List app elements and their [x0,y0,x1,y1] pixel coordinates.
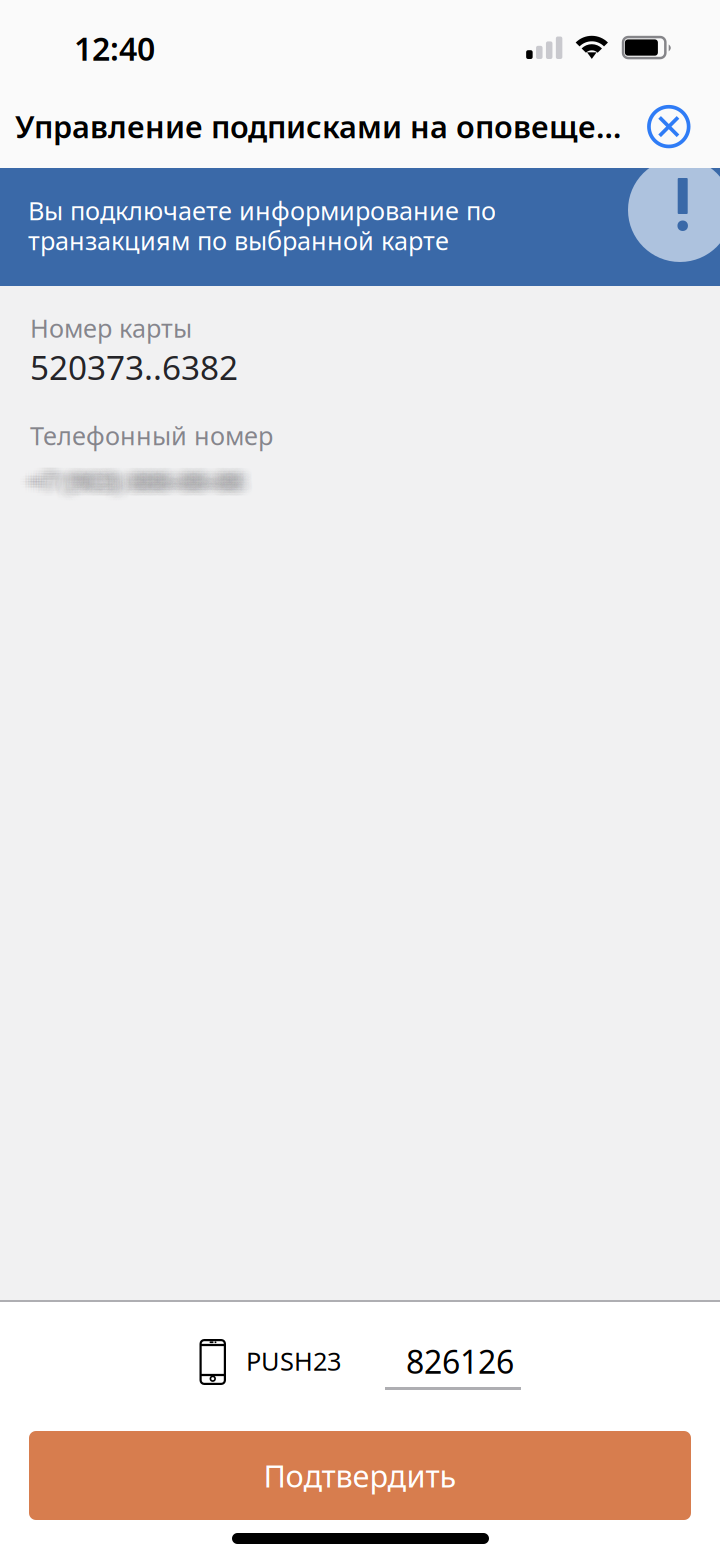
button[interactable]: Close [636,94,702,160]
staticText: +7 (903) 888-88-88 [19,461,233,495]
staticText: +7 (903) 888-88-88 [29,461,243,495]
staticText: +7 (903) 888-88-88 [24,461,238,495]
staticText: 826126 [406,1340,514,1382]
staticText: +7 (903) 888-88-88 [34,469,248,503]
staticText: Телефонный номер [30,418,273,452]
staticText: +7 (903) 888-88-88 [36,469,250,503]
staticText: +7 (903) 888-88-88 [39,469,253,503]
staticText: +7 (903) 888-88-88 [36,466,250,500]
staticText: +7 (903) 888-88-88 [34,461,248,495]
staticText: +7 (903) 888-88-88 [36,464,250,498]
staticText: +7 (903) 888-88-88 [21,464,235,498]
staticText: +7 (903) 888-88-88 [39,461,253,495]
staticText: +7 (903) 888-88-88 [19,459,233,493]
staticText: +7 (903) 888-88-88 [31,464,245,498]
staticText: +7 (903) 888-88-88 [34,459,248,493]
staticText: Управление подписками на оповеще… [15,106,621,147]
staticText: Номер карты [30,311,192,345]
button[interactable]: Подтвердить [29,1431,691,1520]
staticText: +7 (903) 888-88-88 [29,459,243,493]
staticText: +7 (903) 888-88-88 [26,466,240,500]
staticText: +7 (903) 888-88-88 [39,466,253,500]
staticText: +7 (903) 888-88-88 [39,464,253,498]
staticText: +7 (903) 888-88-88 [19,469,233,503]
staticText: +7 (903) 888-88-88 [21,461,235,495]
staticText: +7 (903) 888-88-88 [24,464,238,498]
staticText: +7 (903) 888-88-88 [24,469,238,503]
staticText: +7 (903) 888-88-88 [26,469,240,503]
staticText: 520373..6382 [30,345,238,389]
staticText: +7 (903) 888-88-88 [29,469,243,503]
staticText: +7 (903) 888-88-88 [31,466,245,500]
staticText: транзакциям по выбранной карте [28,223,449,257]
staticText: Вы подключаете информирование по [28,193,496,227]
staticText: Подтвердить [263,1455,456,1496]
staticText: +7 (903) 888-88-88 [24,466,238,500]
staticText: +7 (903) 888-88-88 [26,461,240,495]
staticText: +7 (903) 888-88-88 [24,459,238,493]
staticText: +7 (903) 888-88-88 [36,459,250,493]
staticText: +7 (903) 888-88-88 [29,466,243,500]
staticText: +7 (903) 888-88-88 [21,469,235,503]
staticText: +7 (903) 888-88-88 [31,459,245,493]
staticText: +7 (903) 888-88-88 [34,464,248,498]
staticText: +7 (903) 888-88-88 [19,466,233,500]
staticText: +7 (903) 888-88-88 [26,459,240,493]
staticText: +7 (903) 888-88-88 [21,466,235,500]
staticText: +7 (903) 888-88-88 [21,459,235,493]
staticText: +7 (903) 888-88-88 [36,461,250,495]
staticText: +7 (903) 888-88-88 [29,464,243,498]
staticText: 12:40 [74,27,155,69]
staticText: +7 (903) 888-88-88 [26,464,240,498]
staticText: +7 (903) 888-88-88 [31,469,245,503]
staticText: +7 (903) 888-88-88 [31,461,245,495]
staticText: +7 (903) 888-88-88 [19,464,233,498]
staticText: +7 (903) 888-88-88 [34,466,248,500]
staticText: +7 (903) 888-88-88 [39,459,253,493]
staticText: PUSH23 [246,1344,341,1378]
